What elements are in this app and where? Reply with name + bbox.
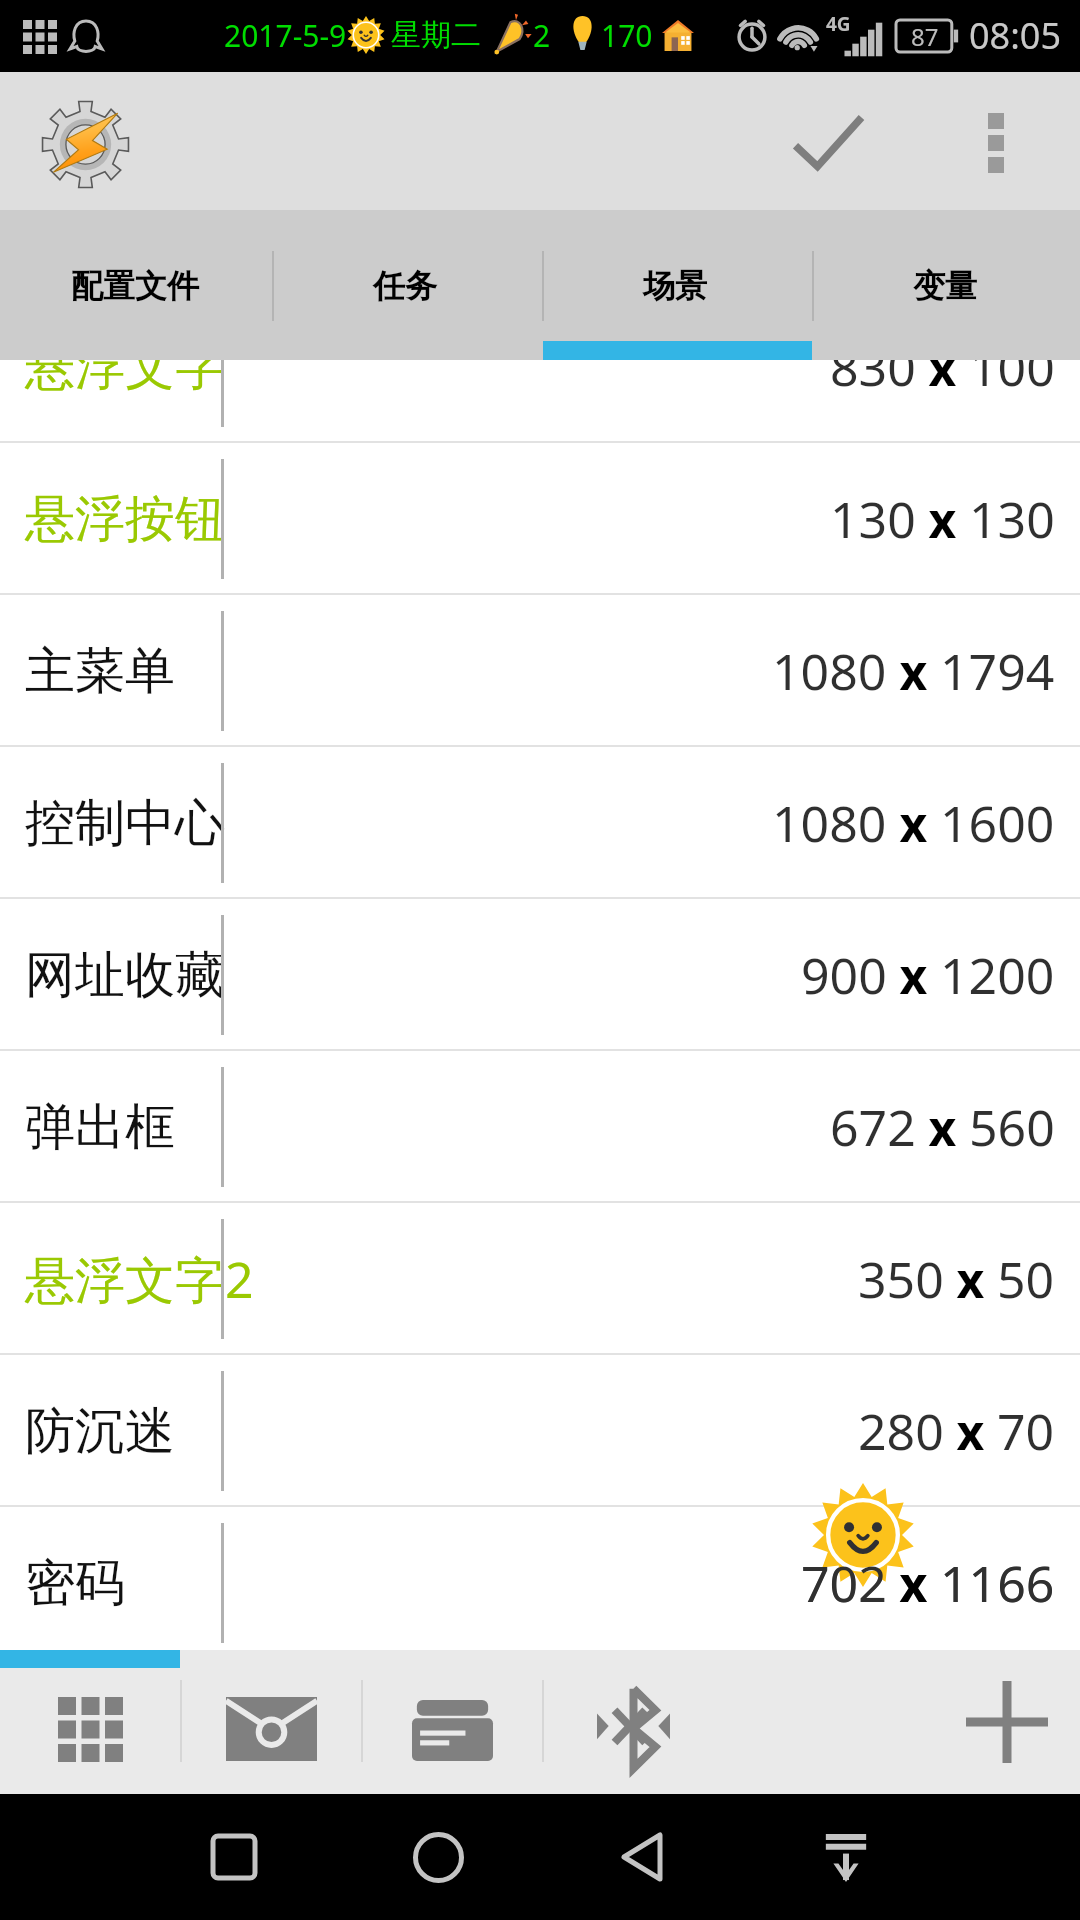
staticText: 702 — [801, 1549, 887, 1617]
staticText: x — [916, 487, 969, 552]
staticText: 170 — [601, 15, 653, 56]
staticText: 1166 — [940, 1549, 1055, 1617]
staticText: 1200 — [940, 941, 1055, 1009]
button[interactable]: 控制中心 — [0, 747, 1080, 899]
staticText: 1166 — [940, 1549, 1055, 1617]
button[interactable]: Card — [362, 1668, 543, 1794]
staticText: 70 — [997, 1397, 1055, 1465]
button[interactable]: 悬浮按钮 — [0, 443, 1080, 595]
staticText: 08:05 — [969, 11, 1062, 60]
staticText: x — [916, 1095, 969, 1160]
staticText: 弹出框 — [25, 1096, 175, 1159]
staticText: x — [916, 360, 969, 400]
button[interactable]: Add — [934, 1668, 1080, 1794]
staticText: 密码 — [25, 1552, 125, 1615]
button[interactable]: Tasker — [14, 81, 156, 201]
button[interactable]: Apps — [0, 1668, 181, 1794]
staticText: x — [887, 1551, 940, 1616]
button[interactable]: Home — [368, 1802, 508, 1912]
staticText: x — [887, 791, 940, 856]
button[interactable]: 悬浮文字2 — [0, 1203, 1080, 1355]
staticText: 主菜单 — [25, 640, 175, 703]
staticText: 配置文件 — [71, 266, 199, 306]
staticText: 场景 — [643, 266, 707, 306]
staticText: 87 — [911, 20, 939, 52]
staticText: 悬浮文字 — [25, 360, 225, 399]
staticText: 560 — [969, 1093, 1055, 1161]
staticText: 100 — [969, 360, 1055, 401]
staticText: 280 — [858, 1397, 944, 1465]
staticText: 2017-5-9 — [224, 15, 347, 56]
staticText: 130 — [830, 485, 916, 553]
staticText: x — [944, 1247, 997, 1312]
button[interactable]: 防沉迷 — [0, 1355, 1080, 1507]
button[interactable]: More options — [954, 83, 1038, 199]
staticText: 防沉迷 — [25, 1400, 175, 1463]
staticText: 任务 — [373, 266, 437, 306]
staticText: 50 — [997, 1245, 1055, 1313]
staticText: 4G — [826, 11, 851, 37]
staticText: x — [887, 639, 940, 704]
button[interactable]: Messages — [181, 1668, 362, 1794]
staticText: 1600 — [940, 789, 1055, 857]
button[interactable]: 密码 — [0, 1507, 1080, 1650]
staticText: 悬浮按钮 — [25, 488, 225, 551]
staticText: 350 — [858, 1245, 944, 1313]
button[interactable]: Apply — [763, 87, 893, 195]
staticText: 1080 — [772, 637, 887, 705]
button[interactable]: Recents — [164, 1802, 304, 1912]
staticText: 控制中心 — [25, 792, 225, 855]
button[interactable]: 场景 — [540, 210, 810, 360]
staticText: 悬浮文字2 — [25, 1245, 254, 1313]
staticText: x — [944, 1399, 997, 1464]
staticText: 900 — [801, 941, 887, 1009]
button[interactable]: 主菜单 — [0, 595, 1080, 747]
staticText: 1794 — [940, 637, 1055, 705]
button[interactable]: 悬浮文字 — [0, 360, 1080, 443]
button[interactable]: 变量 — [810, 210, 1080, 360]
button[interactable]: 弹出框 — [0, 1051, 1080, 1203]
staticText: 130 — [969, 485, 1055, 553]
staticText: x — [887, 1551, 940, 1616]
staticText: 830 — [830, 360, 916, 401]
button[interactable]: Back — [572, 1802, 712, 1912]
staticText: 1080 — [772, 789, 887, 857]
staticText: 变量 — [913, 266, 977, 306]
staticText: x — [887, 943, 940, 1008]
button[interactable]: 配置文件 — [0, 210, 270, 360]
staticText: 网址收藏 — [25, 944, 225, 1007]
button[interactable]: 网址收藏 — [0, 899, 1080, 1051]
button[interactable]: Bluetooth — [543, 1668, 724, 1794]
button[interactable]: Hide keyboard — [776, 1802, 916, 1912]
button[interactable]: 任务 — [270, 210, 540, 360]
staticText: 672 — [830, 1093, 916, 1161]
staticText: 702 — [801, 1549, 887, 1617]
staticText: 星期二 — [391, 16, 481, 54]
staticText: 2 — [533, 15, 551, 56]
